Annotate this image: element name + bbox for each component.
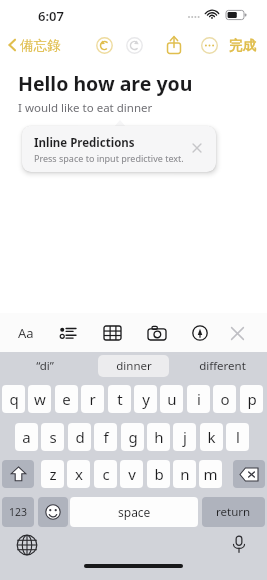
- staticText: d: [75, 427, 85, 447]
- button[interactable]: More: [201, 37, 218, 54]
- button[interactable]: Text format: [13, 320, 39, 346]
- staticText: y: [142, 389, 150, 409]
- button[interactable]: space: [70, 497, 198, 527]
- staticText: e: [62, 389, 71, 409]
- button[interactable]: i: [187, 385, 210, 413]
- button[interactable]: u: [160, 385, 183, 413]
- staticText: l: [236, 427, 240, 447]
- staticText: b: [154, 464, 164, 484]
- button[interactable]: a: [15, 423, 38, 451]
- button[interactable]: dinner: [89, 352, 178, 380]
- staticText: I would like to eat dinner: [18, 100, 153, 116]
- button[interactable]: Table: [99, 320, 125, 346]
- button[interactable]: Camera: [144, 320, 170, 346]
- button[interactable]: r: [81, 385, 104, 413]
- staticText: Aa: [18, 324, 34, 342]
- staticText: c: [102, 464, 110, 484]
- staticText: return: [216, 504, 251, 520]
- staticText: v: [128, 464, 136, 484]
- button[interactable]: “di”: [0, 352, 89, 380]
- button[interactable]: d: [68, 423, 91, 451]
- staticText: k: [207, 427, 216, 447]
- button[interactable]: l: [226, 423, 249, 451]
- staticText: q: [9, 389, 19, 409]
- staticText: m: [203, 464, 218, 484]
- button[interactable]: n: [173, 460, 196, 488]
- staticText: o: [220, 389, 230, 409]
- staticText: Inline Predictions: [34, 135, 135, 151]
- staticText: p: [247, 389, 257, 409]
- button[interactable]: v: [120, 460, 143, 488]
- button[interactable]: p: [240, 385, 263, 413]
- button[interactable]: c: [94, 460, 117, 488]
- staticText: 123: [9, 505, 28, 519]
- button[interactable]: x: [67, 460, 90, 488]
- button[interactable]: f: [94, 423, 117, 451]
- button[interactable]: q: [2, 385, 25, 413]
- staticText: h: [154, 427, 164, 447]
- button[interactable]: h: [147, 423, 170, 451]
- button[interactable]: Switch keyboard: [16, 534, 38, 556]
- staticText: r: [89, 389, 96, 409]
- button[interactable]: Shift: [2, 460, 34, 488]
- button[interactable]: Backspace: [233, 460, 265, 488]
- staticText: 6:07: [38, 7, 64, 25]
- staticText: u: [167, 389, 177, 409]
- staticText: g: [128, 427, 138, 447]
- staticText: t: [117, 389, 123, 409]
- button[interactable]: Emoji: [38, 497, 68, 527]
- button[interactable]: Undo: [96, 37, 113, 54]
- staticText: w: [34, 389, 46, 409]
- button[interactable]: w: [28, 385, 51, 413]
- staticText: s: [49, 427, 57, 447]
- button[interactable]: Markup: [187, 320, 213, 346]
- staticText: 完成: [229, 37, 256, 54]
- staticText: space: [118, 504, 151, 520]
- button[interactable]: return: [202, 497, 265, 527]
- button[interactable]: 123: [2, 497, 34, 527]
- button[interactable]: Share: [165, 35, 183, 55]
- button[interactable]: k: [200, 423, 223, 451]
- button[interactable]: y: [134, 385, 157, 413]
- staticText: dinner: [116, 358, 152, 374]
- staticText: x: [75, 464, 83, 484]
- staticText: Press space to input predictive text.: [34, 152, 184, 164]
- button[interactable]: Checklist: [55, 320, 81, 346]
- button[interactable]: Redo: [126, 37, 143, 54]
- staticText: i: [197, 389, 201, 409]
- staticText: different: [199, 358, 246, 374]
- button[interactable]: o: [213, 385, 236, 413]
- staticText: 備忘錄: [20, 37, 61, 54]
- button[interactable]: 完成: [226, 30, 259, 60]
- staticText: j: [183, 427, 187, 447]
- button[interactable]: Close: [188, 139, 206, 157]
- button[interactable]: different: [178, 352, 267, 380]
- staticText: Hello how are you: [18, 70, 193, 97]
- staticText: “di”: [36, 358, 54, 374]
- button[interactable]: Close: [224, 320, 250, 346]
- button[interactable]: z: [41, 460, 64, 488]
- staticText: f: [103, 427, 109, 447]
- button[interactable]: t: [108, 385, 131, 413]
- button[interactable]: e: [55, 385, 78, 413]
- staticText: a: [22, 427, 31, 447]
- button[interactable]: b: [147, 460, 170, 488]
- button[interactable]: Dictate: [228, 533, 250, 555]
- button[interactable]: s: [41, 423, 64, 451]
- button[interactable]: m: [199, 460, 222, 488]
- button[interactable]: 備忘錄: [5, 30, 64, 60]
- button[interactable]: g: [121, 423, 144, 451]
- staticText: z: [49, 464, 57, 484]
- staticText: n: [180, 464, 190, 484]
- button[interactable]: j: [173, 423, 196, 451]
